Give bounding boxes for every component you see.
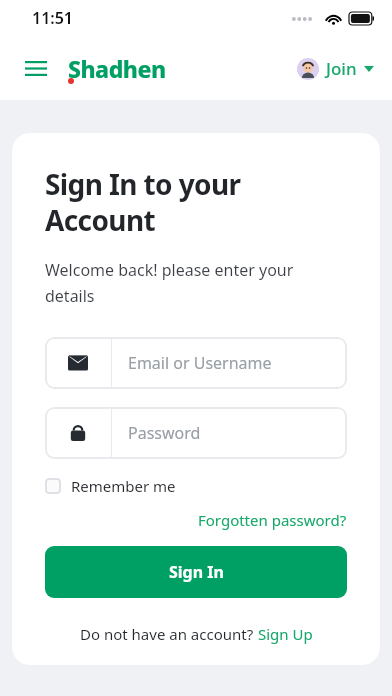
button[interactable]: Sign In <box>45 546 347 598</box>
staticText: Remember me <box>71 476 176 496</box>
button[interactable]: Do not have an account? <box>80 624 313 644</box>
button[interactable]: Password <box>45 407 347 459</box>
staticText: Password <box>128 422 201 444</box>
staticText: Sign In to your Account <box>45 165 241 239</box>
button[interactable]: Remember me <box>45 476 176 496</box>
button[interactable]: Menu <box>18 50 54 86</box>
staticText: Do not have an account? <box>80 624 258 644</box>
staticText: Join <box>326 57 357 80</box>
staticText: Email or Username <box>128 352 272 374</box>
staticText: Sign In <box>169 561 224 583</box>
button[interactable]: Shadhen <box>68 53 166 84</box>
button[interactable]: Join <box>297 57 374 80</box>
staticText: 11:51 <box>32 7 74 29</box>
button[interactable]: Forgotten password? <box>198 510 347 530</box>
staticText: Shadhen <box>68 53 166 84</box>
staticText: Sign Up <box>258 624 313 644</box>
button[interactable]: Email or Username <box>45 337 347 389</box>
staticText: Welcome back! please enter your details <box>45 259 294 307</box>
